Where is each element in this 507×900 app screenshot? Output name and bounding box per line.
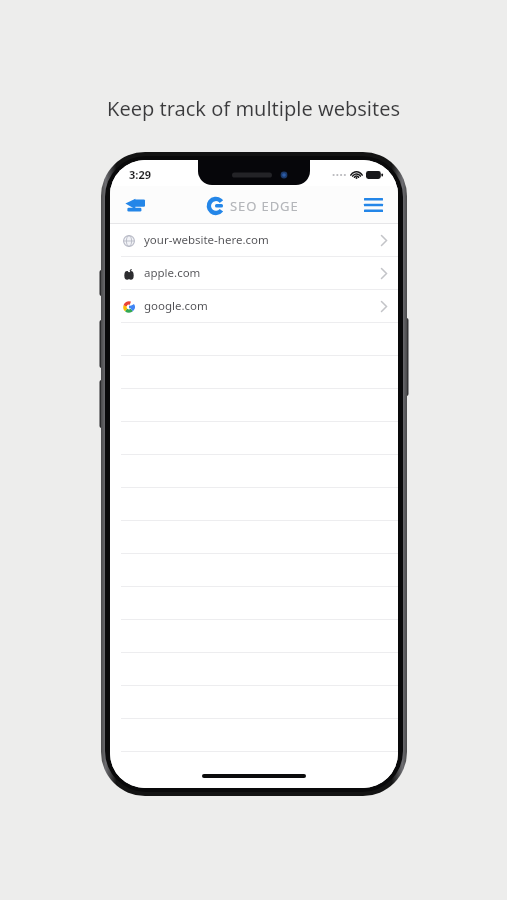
button[interactable]: google.com [110,290,398,323]
staticText: google.com [144,298,208,314]
staticText: apple.com [144,265,201,281]
button[interactable]: apple.com [110,257,398,290]
button[interactable]: Announcements [118,188,152,222]
staticText: Keep track of multiple websites [107,95,401,122]
button[interactable]: Menu [356,188,390,222]
staticText: 3:29 [129,167,151,182]
button[interactable]: your-website-here.com [110,224,398,257]
staticText: your-website-here.com [144,232,269,248]
button[interactable]: SEO EDGE [206,195,299,216]
staticText: SEO EDGE [230,197,299,215]
